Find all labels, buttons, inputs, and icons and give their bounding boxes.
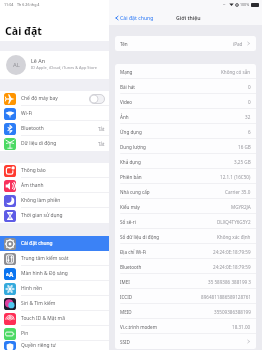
- button[interactable]: Địa chỉ Wi-Fi: [115, 244, 256, 259]
- button[interactable]: Wi-Fi: [0, 106, 109, 121]
- button[interactable]: Dữ liệu di động: [0, 136, 109, 151]
- button[interactable]: Trung tâm kiểm soát: [0, 251, 109, 266]
- staticText: Dữ liệu di động: [21, 140, 57, 147]
- staticText: Tắt: [98, 126, 105, 132]
- staticText: Cài đặt chung: [21, 240, 53, 247]
- staticText: Lê An: [31, 57, 46, 64]
- staticText: Kiểu máy: [120, 204, 140, 210]
- staticText: Carrier 35.0: [225, 189, 251, 195]
- staticText: Hình nền: [21, 285, 43, 292]
- staticText: 100%: [240, 2, 250, 7]
- button[interactable]: Cài đặt chung: [114, 14, 154, 21]
- staticText: 35 589386 388199 3: [208, 279, 251, 285]
- staticText: Âm thanh: [21, 182, 44, 189]
- staticText: Khả dụng: [120, 159, 141, 165]
- staticText: Bài hát: [120, 84, 136, 90]
- staticText: 18.31.00: [232, 324, 251, 330]
- staticText: DLXQ4TY6G5Y2: [217, 219, 251, 225]
- staticText: Vi.c.trình modem: [120, 324, 158, 330]
- staticText: Thời gian sử dụng: [21, 212, 63, 219]
- button[interactable]: Mạng: [115, 64, 256, 79]
- button[interactable]: Kiểu máy: [115, 199, 256, 214]
- button[interactable]: Tên: [115, 36, 256, 51]
- staticText: 24:24:0E:18:79:59: [213, 249, 251, 255]
- button[interactable]: AL: [0, 51, 109, 79]
- staticText: Ảnh: [120, 114, 129, 120]
- button[interactable]: Thông báo: [0, 163, 109, 178]
- staticText: Mạng: [120, 69, 133, 75]
- button[interactable]: Số dữ liệu di động: [115, 229, 256, 244]
- staticText: 16 GB: [238, 144, 251, 150]
- staticText: Ứng dụng: [120, 129, 142, 135]
- staticText: 8964811886589128761: [201, 294, 251, 300]
- staticText: Th 6 26 thg 4: [17, 2, 40, 7]
- button[interactable]: Thời gian sử dụng: [0, 208, 109, 223]
- staticText: ICCID: [120, 294, 133, 300]
- staticText: Trung tâm kiểm soát: [21, 255, 69, 262]
- staticText: Cài đặt chung: [120, 14, 154, 21]
- staticText: 35509386388199: [214, 309, 251, 315]
- button[interactable]: A: [0, 266, 109, 281]
- button[interactable]: Hình nền: [0, 281, 109, 296]
- staticText: Siri & Tìm kiếm: [21, 300, 56, 307]
- button[interactable]: Nhà cung cấp: [115, 184, 256, 199]
- staticText: 32: [245, 114, 251, 120]
- staticText: Giới thiệu: [176, 14, 201, 21]
- staticText: Dung lượng: [120, 144, 146, 150]
- button[interactable]: Số sê-ri: [115, 214, 256, 229]
- staticText: Video: [120, 99, 133, 105]
- button[interactable]: Pin: [0, 326, 109, 341]
- staticText: Pin: [21, 330, 29, 337]
- button[interactable]: Ảnh: [115, 109, 256, 124]
- staticText: Không có sẵn: [221, 69, 251, 75]
- button[interactable]: Vi.c.trình modem: [115, 319, 256, 334]
- staticText: Không làm phiền: [21, 197, 61, 204]
- button[interactable]: Cài đặt chung: [0, 236, 109, 251]
- button[interactable]: Dung lượng: [115, 139, 256, 154]
- button[interactable]: Chế độ máy bay: [0, 91, 109, 106]
- staticText: ID Apple, iCloud, iTunes & App Store: [31, 65, 97, 70]
- staticText: 12.1.1 (16C50): [220, 174, 251, 180]
- staticText: MGYR2JA: [231, 204, 251, 210]
- staticText: MEID: [120, 309, 132, 315]
- button[interactable]: Touch ID & Mật mã: [0, 311, 109, 326]
- staticText: Quyền riêng tư: [21, 342, 56, 349]
- staticText: Không xác định: [217, 234, 251, 240]
- staticText: IMEI: [120, 279, 130, 285]
- staticText: 24:24:0E:18:79:59: [213, 264, 251, 270]
- staticText: 6: [248, 129, 251, 135]
- button[interactable]: Không làm phiền: [0, 193, 109, 208]
- staticText: Màn hình & Độ sáng: [21, 270, 68, 277]
- button[interactable]: Âm thanh: [0, 178, 109, 193]
- staticText: 3,25 GB: [234, 159, 251, 165]
- staticText: Chế độ máy bay: [21, 95, 58, 102]
- button[interactable]: Bài hát: [115, 79, 256, 94]
- staticText: SSID: [120, 339, 130, 345]
- button[interactable]: Khả dụng: [115, 154, 256, 169]
- staticText: Tên: [120, 41, 128, 47]
- staticText: Địa chỉ Wi-Fi: [120, 249, 147, 255]
- button[interactable]: Video: [115, 94, 256, 109]
- button[interactable]: ICCID: [115, 289, 256, 304]
- button[interactable]: Bluetooth: [115, 259, 256, 274]
- staticText: Bluetooth: [21, 125, 44, 132]
- staticText: 11:04: [4, 2, 14, 7]
- button[interactable]: SSID: [115, 334, 256, 349]
- staticText: Số dữ liệu di động: [120, 234, 160, 240]
- button[interactable]: Siri & Tìm kiếm: [0, 296, 109, 311]
- button[interactable]: Quyền riêng tư: [0, 341, 109, 350]
- staticText: AL: [13, 61, 20, 69]
- button[interactable]: Ứng dụng: [115, 124, 256, 139]
- staticText: Cài đặt: [5, 24, 42, 38]
- button[interactable]: Phiên bản: [115, 169, 256, 184]
- button[interactable]: IMEI: [115, 274, 256, 289]
- staticText: Bluetooth: [120, 264, 142, 270]
- button[interactable]: Bluetooth: [0, 121, 109, 136]
- staticText: A: [9, 270, 14, 278]
- staticText: Touch ID & Mật mã: [21, 315, 65, 322]
- button[interactable]: MEID: [115, 304, 256, 319]
- staticText: Wi-Fi: [21, 110, 33, 117]
- staticText: 0: [248, 99, 251, 105]
- staticText: Nhà cung cấp: [120, 189, 150, 195]
- staticText: 0: [248, 84, 251, 90]
